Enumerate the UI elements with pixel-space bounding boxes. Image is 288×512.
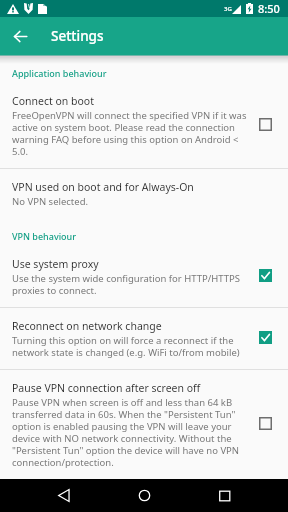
staticText: Reconnect on network change [12,319,162,333]
button[interactable]: VPN used on boot and for Always-On [0,169,288,218]
button[interactable]: Back [42,479,82,512]
staticText: VPN behaviour [12,230,77,242]
staticText: Settings [51,27,104,45]
staticText: Turning this option on will force a reco… [12,334,248,359]
staticText: 3G [224,5,232,13]
staticText: Use system proxy [12,257,99,271]
button[interactable]: Connect on boot [0,83,288,168]
staticText: Application behaviour [12,67,107,79]
staticText: 8:50 [258,1,280,16]
staticText: Pause VPN when screen is off and less th… [12,396,248,469]
staticText: No VPN selected. [12,195,89,208]
button[interactable]: Home [124,479,164,512]
button[interactable]: Back [0,17,38,55]
button[interactable]: Recent apps [206,479,246,512]
button[interactable]: Pause VPN connection after screen off [0,370,288,479]
staticText: Connect on boot [12,94,94,108]
button[interactable]: Use system proxy [0,246,288,307]
button[interactable]: Reconnect on network change [0,308,288,369]
staticText: Pause VPN connection after screen off [12,381,201,395]
staticText: Use the system wide configuration for HT… [12,272,248,297]
staticText: VPN used on boot and for Always-On [12,180,194,194]
staticText: FreeOpenVPN will connect the specified V… [12,109,248,158]
